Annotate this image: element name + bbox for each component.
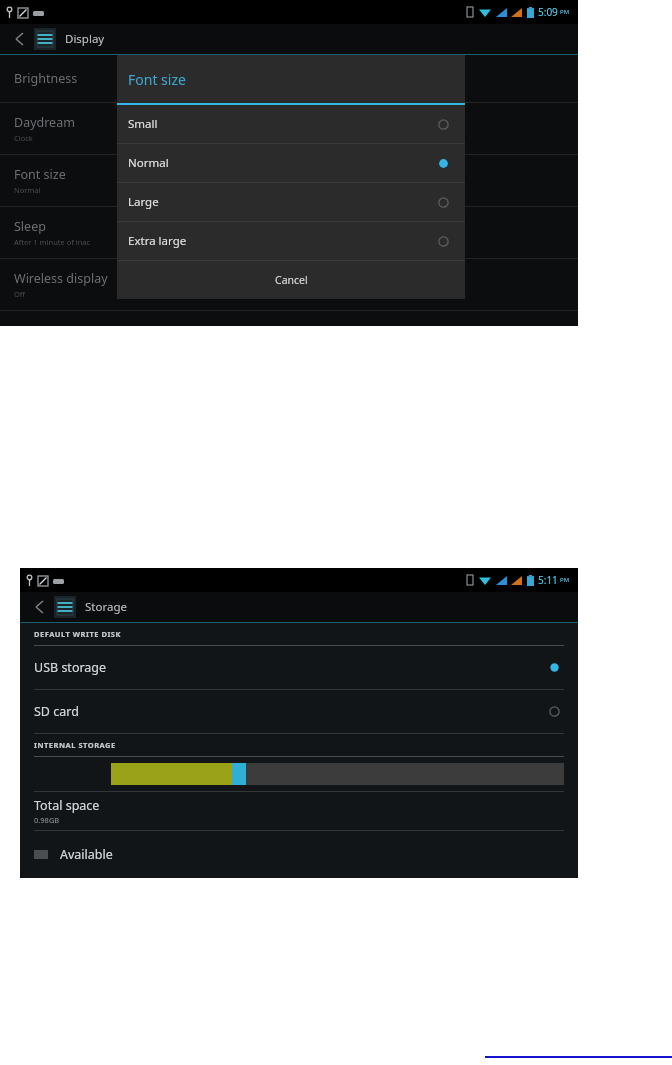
button[interactable]: Total space [20, 792, 578, 830]
staticText: Sleep [14, 218, 46, 235]
staticText: Available [60, 846, 113, 863]
button[interactable]: Large [117, 183, 465, 221]
button[interactable]: Cancel [117, 261, 465, 299]
button[interactable]: Back [4, 24, 34, 54]
staticText: Storage [85, 599, 127, 615]
staticText: INTERNAL STORAGE [34, 740, 116, 750]
staticText: 5:09 [538, 5, 558, 19]
button[interactable]: USB storage [20, 646, 578, 690]
staticText: DEFAULT WRITE DISK [34, 629, 121, 639]
staticText: Small [128, 116, 158, 132]
staticText: Brightness [14, 70, 78, 87]
staticText: 5:11 [538, 573, 558, 587]
button[interactable]: Extra large [117, 222, 465, 260]
staticText: USB storage [34, 659, 107, 676]
staticText: After 1 minute of inac [14, 237, 91, 247]
staticText: PM [560, 8, 570, 16]
staticText: 0.98GB [34, 815, 60, 825]
staticText: Font size [14, 166, 66, 183]
button[interactable]: Brightness [0, 55, 578, 103]
staticText: Clock [14, 133, 33, 143]
button[interactable]: Small [117, 105, 465, 143]
staticText: Wireless display [14, 270, 108, 287]
staticText: Off [14, 289, 26, 299]
button[interactable]: Wireless display [0, 259, 578, 311]
staticText: Cancel [275, 273, 308, 287]
button[interactable]: Font size [0, 155, 578, 207]
staticText: Font size [128, 70, 186, 89]
staticText: Daydream [14, 114, 75, 131]
staticText: Extra large [128, 233, 187, 249]
button[interactable]: Back [24, 592, 54, 622]
staticText: Normal [128, 155, 169, 171]
button[interactable]: Normal [117, 144, 465, 182]
button[interactable]: Sleep [0, 207, 578, 259]
staticText: Large [128, 194, 159, 210]
staticText: Display [65, 31, 105, 47]
button[interactable]: Daydream [0, 103, 578, 155]
staticText: PM [560, 576, 570, 584]
staticText: SD card [34, 703, 79, 720]
button[interactable]: SD card [20, 690, 578, 734]
staticText: Normal [14, 185, 41, 195]
staticText: Total space [34, 797, 100, 814]
